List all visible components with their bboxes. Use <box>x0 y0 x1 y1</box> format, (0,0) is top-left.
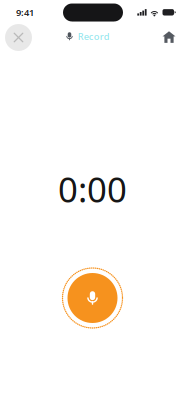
button[interactable]: Home <box>154 22 184 52</box>
button[interactable]: Record <box>60 266 124 330</box>
button[interactable]: Close <box>0 19 36 55</box>
staticText: 9:41 <box>16 6 34 19</box>
staticText: Record <box>78 30 110 42</box>
staticText: 0:00 <box>58 166 127 212</box>
button[interactable]: Record <box>58 24 118 48</box>
